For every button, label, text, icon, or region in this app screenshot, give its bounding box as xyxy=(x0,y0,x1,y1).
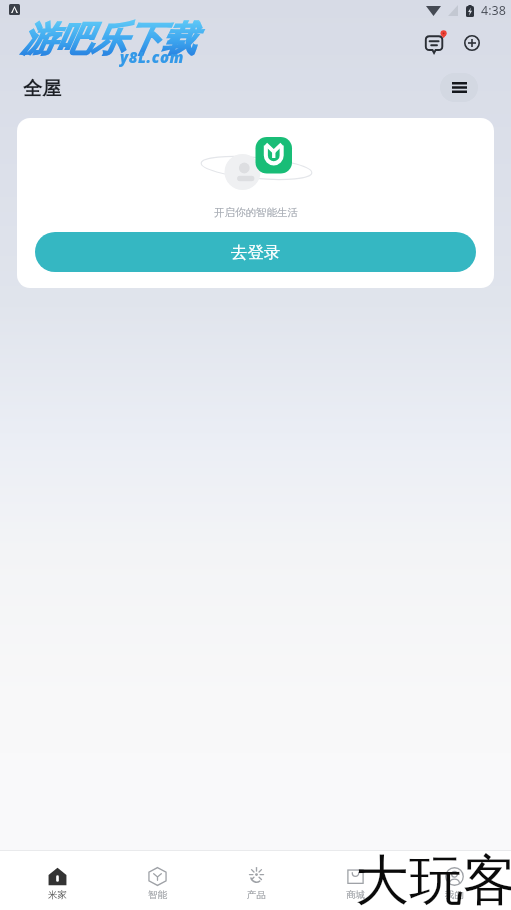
button[interactable]: 米家 xyxy=(7,851,107,910)
button[interactable]: Menu xyxy=(440,73,478,102)
staticText: 我的 xyxy=(445,889,464,901)
staticText: 全屋 xyxy=(23,77,61,101)
staticText: 智能 xyxy=(148,889,167,901)
staticText: y8L.com xyxy=(120,47,185,67)
button[interactable]: 智能 xyxy=(107,851,207,910)
button[interactable]: 商城 xyxy=(306,851,405,910)
staticText: 游吧乐下载 xyxy=(21,17,196,61)
staticText: 米家 xyxy=(48,889,67,901)
staticText: 开启你的智能生活 xyxy=(214,206,298,219)
button[interactable]: 我的 xyxy=(405,851,504,910)
staticText: 产品 xyxy=(247,889,266,901)
button[interactable]: 去登录 xyxy=(35,232,476,272)
staticText: 4:38 xyxy=(481,2,506,19)
button[interactable]: Messages xyxy=(415,26,447,58)
staticText: 商城 xyxy=(346,889,365,901)
staticText: 大玩客 xyxy=(355,847,511,910)
button[interactable]: Add device xyxy=(456,28,486,58)
button[interactable]: 产品 xyxy=(207,851,306,910)
staticText: 去登录 xyxy=(231,242,281,263)
